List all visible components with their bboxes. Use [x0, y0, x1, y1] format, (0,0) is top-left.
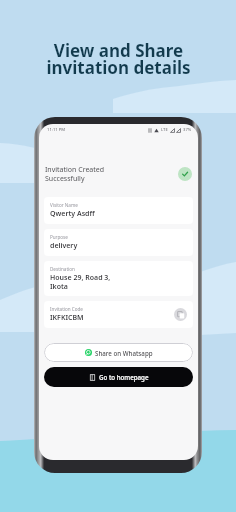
staticText: Destination [50, 266, 75, 272]
button[interactable]: Share on Whatsapp [44, 343, 193, 362]
staticText: Invitation Created Successfully [45, 165, 105, 183]
staticText: IKFKICBM [50, 313, 84, 323]
button[interactable]: Visitor Name [44, 197, 193, 224]
staticText: 37% [183, 127, 192, 133]
staticText: LTE [161, 127, 168, 133]
staticText: Qwerty Asdff [50, 209, 95, 219]
staticText: Go to homepage [99, 373, 149, 381]
staticText: House 29, Road 3, Ikota [50, 273, 111, 291]
staticText: View and Share invitation details [46, 39, 191, 79]
staticText: Purpose [50, 234, 68, 240]
button[interactable]: Destination [44, 261, 193, 296]
staticText: Invitation Code [50, 306, 83, 312]
button[interactable]: Purpose [44, 229, 193, 256]
button[interactable]: Copy invitation code [174, 308, 187, 321]
staticText: delivery [50, 241, 78, 251]
staticText: Share on Whatsapp [95, 349, 153, 357]
staticText: 11:11 PM [47, 127, 66, 133]
staticText: Visitor Name [50, 202, 78, 208]
button[interactable]: Invitation Code [44, 301, 193, 328]
button[interactable]: Go to homepage [44, 367, 193, 387]
